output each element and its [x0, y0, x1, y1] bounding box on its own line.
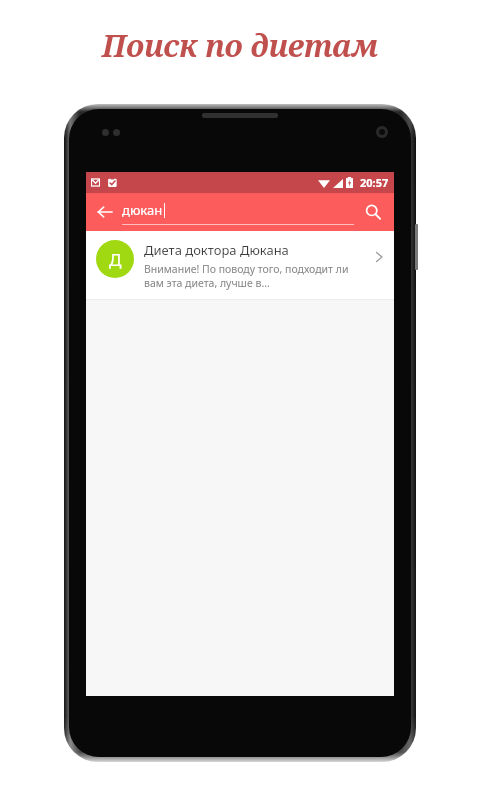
staticText: Поиск по диетам: [102, 25, 379, 66]
staticText: Диета доктора Дюкана: [144, 241, 289, 259]
button[interactable]: Назад: [89, 196, 121, 228]
staticText: дюкан: [122, 201, 163, 219]
button[interactable]: Поиск: [358, 197, 388, 227]
staticText: Д: [109, 248, 122, 271]
staticText: 20:57: [360, 175, 389, 190]
button[interactable]: Д: [86, 231, 394, 299]
staticText: Внимание! По поводу того, подходит ли ва…: [144, 262, 366, 290]
button[interactable]: дюкан: [122, 197, 354, 227]
